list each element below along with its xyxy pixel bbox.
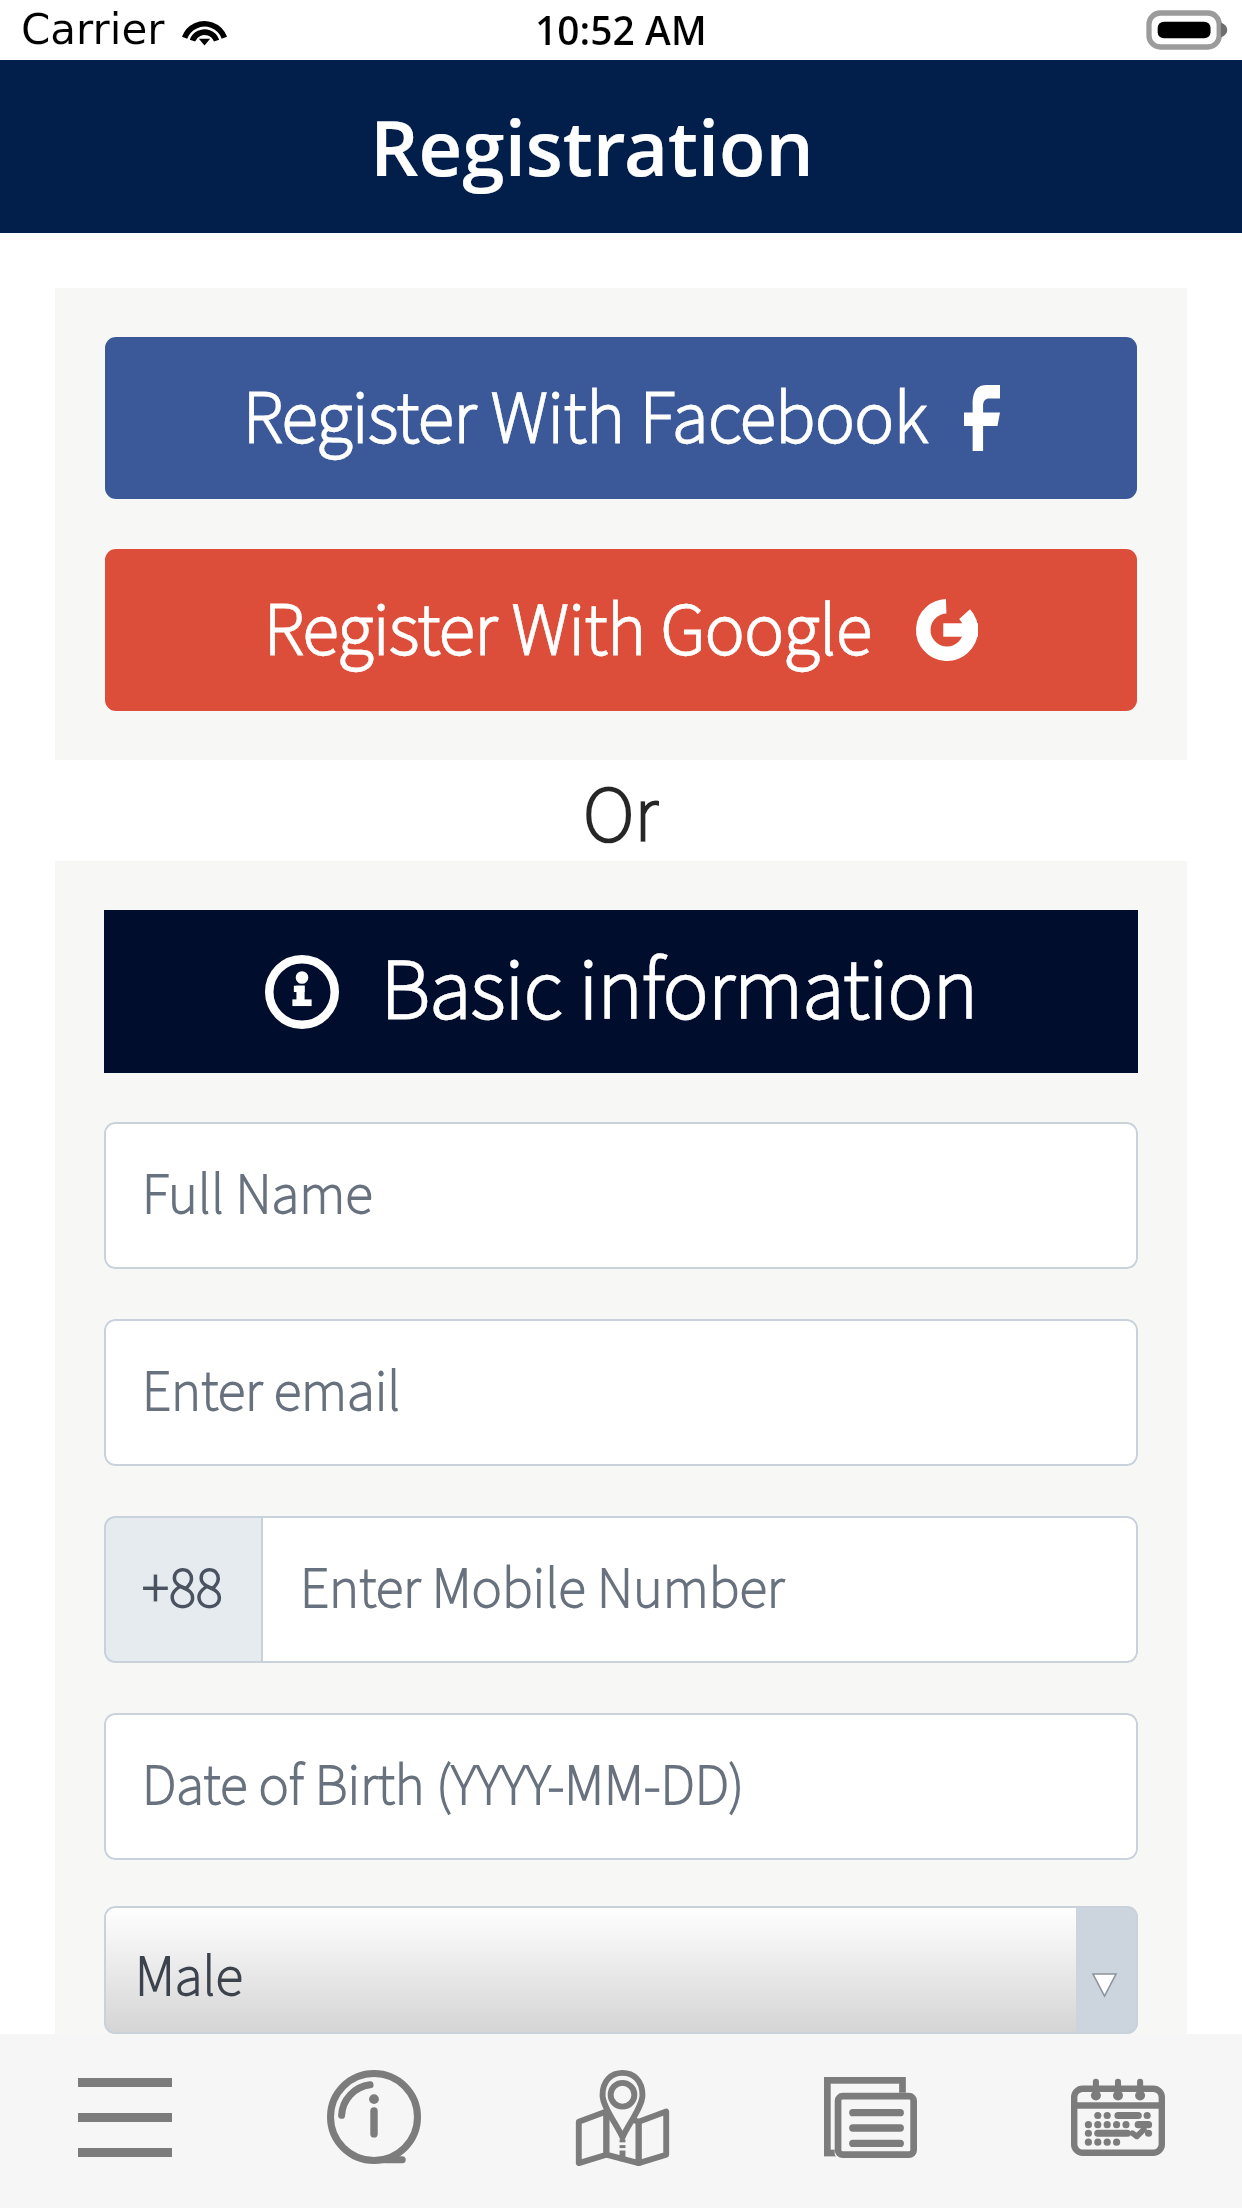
button[interactable]: Information [249, 2034, 498, 2208]
button[interactable]: +88 [104, 1516, 1138, 1663]
staticText: Basic information [381, 931, 978, 1052]
button[interactable]: Enter email [104, 1319, 1138, 1466]
staticText: Register With Facebook [243, 366, 928, 471]
button[interactable]: Register With Google [105, 549, 1137, 711]
button[interactable]: Calendar [994, 2034, 1242, 2208]
staticText: Date of Birth (YYYY-MM-DD) [142, 1746, 745, 1827]
button[interactable]: Menu [0, 2034, 249, 2208]
staticText: Full Name [142, 1155, 373, 1236]
staticText: +88 [142, 1549, 223, 1630]
staticText: Male [135, 1937, 243, 2018]
button[interactable]: Date of Birth (YYYY-MM-DD) [104, 1713, 1138, 1860]
button[interactable]: Map [498, 2034, 746, 2208]
staticText: Or [583, 760, 659, 861]
staticText: Carrier [21, 5, 165, 54]
button[interactable]: News [746, 2034, 994, 2208]
staticText: Enter Mobile Number [300, 1549, 785, 1630]
staticText: 10:52 AM [535, 3, 707, 56]
staticText: Registration [370, 95, 814, 198]
button[interactable]: Basic information [104, 910, 1138, 1073]
staticText: Enter email [142, 1352, 401, 1433]
button[interactable]: Register With Facebook [105, 337, 1137, 499]
button[interactable]: Male [104, 1906, 1138, 2034]
button[interactable]: Full Name [104, 1122, 1138, 1269]
staticText: Register With Google [264, 578, 872, 683]
